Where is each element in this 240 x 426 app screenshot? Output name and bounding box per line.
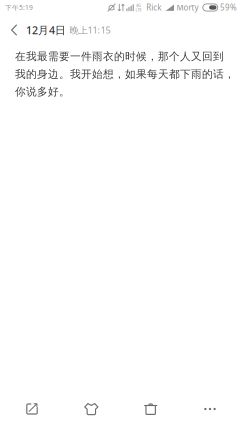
staticText: 12月4日 [26, 23, 66, 37]
button[interactable]: Theme [71, 396, 111, 422]
button[interactable]: Delete [131, 396, 171, 422]
staticText: Rick [146, 2, 161, 13]
staticText: Morty [177, 2, 199, 13]
button[interactable]: Share [12, 396, 52, 422]
staticText: 4G [136, 3, 141, 8]
staticText: 晚上11:15 [69, 24, 110, 36]
staticText: 59% [220, 2, 237, 13]
button[interactable]: More options [190, 396, 230, 422]
staticText: 在我最需要一件雨衣的时候，那个人又回到 我的身边。我开始想，如果每天都下雨的话，… [15, 50, 235, 98]
button[interactable]: Back [5, 19, 23, 41]
staticText: 下午5:19 [5, 3, 33, 12]
staticText: LTE [136, 7, 142, 12]
